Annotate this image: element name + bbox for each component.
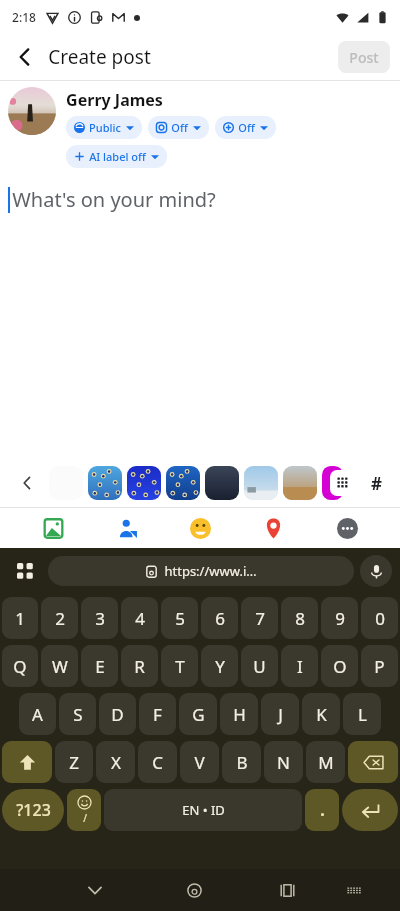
staticText: T bbox=[175, 655, 185, 678]
button[interactable]: AI label off bbox=[66, 145, 167, 168]
staticText: O bbox=[333, 655, 347, 678]
button[interactable]: 6 bbox=[201, 597, 238, 639]
button[interactable]: Home bbox=[176, 872, 212, 908]
button[interactable]: https://www.i… bbox=[48, 556, 354, 586]
button[interactable]: Switch keyboard bbox=[336, 872, 372, 908]
button[interactable]: G bbox=[179, 693, 217, 735]
button[interactable]: W bbox=[41, 645, 78, 687]
button[interactable]: H bbox=[220, 693, 258, 735]
button[interactable]: Public bbox=[66, 116, 142, 139]
button[interactable]: Backspace bbox=[348, 741, 398, 783]
button[interactable]: D bbox=[99, 693, 136, 735]
button[interactable]: E bbox=[81, 645, 118, 687]
button[interactable]: Off bbox=[148, 116, 209, 139]
button[interactable]: K bbox=[302, 693, 340, 735]
button[interactable]: Tag people bbox=[107, 508, 147, 548]
button[interactable]: O bbox=[321, 645, 358, 687]
button[interactable]: Back bbox=[6, 38, 44, 76]
button[interactable]: 2 bbox=[41, 597, 78, 639]
button[interactable]: 7 bbox=[241, 597, 278, 639]
staticText: W bbox=[52, 655, 68, 678]
button[interactable] bbox=[244, 466, 278, 500]
button[interactable]: N bbox=[264, 741, 303, 783]
button[interactable]: Voice input bbox=[360, 555, 392, 587]
button[interactable]: More bbox=[327, 508, 367, 548]
button[interactable]: M bbox=[306, 741, 345, 783]
staticText: A bbox=[32, 703, 43, 726]
staticText: G bbox=[192, 703, 205, 726]
button[interactable]: 9 bbox=[321, 597, 358, 639]
staticText: L bbox=[358, 703, 367, 726]
button[interactable]: EN • ID bbox=[104, 789, 302, 831]
button[interactable]: 5 bbox=[161, 597, 198, 639]
staticText: 5 bbox=[175, 607, 185, 630]
staticText: 1 bbox=[15, 607, 25, 630]
staticText: 4 bbox=[135, 607, 145, 630]
button[interactable]: . bbox=[305, 789, 339, 831]
button[interactable]: Q bbox=[2, 645, 38, 687]
staticText: V bbox=[194, 751, 205, 774]
staticText: 2:18 bbox=[12, 9, 36, 25]
button[interactable]: Off bbox=[215, 116, 276, 139]
staticText: # bbox=[371, 472, 382, 495]
button[interactable] bbox=[88, 466, 122, 500]
button[interactable] bbox=[283, 466, 317, 500]
button[interactable]: Hashtag bbox=[361, 466, 392, 500]
button[interactable] bbox=[166, 466, 200, 500]
button[interactable]: 8 bbox=[281, 597, 318, 639]
staticText: 3 bbox=[95, 607, 105, 630]
staticText: Post bbox=[349, 48, 379, 67]
button[interactable]: Photo bbox=[33, 508, 73, 548]
button[interactable]: Post bbox=[338, 41, 390, 73]
button[interactable]: B bbox=[222, 741, 261, 783]
staticText: I bbox=[297, 655, 303, 678]
button[interactable]: P bbox=[361, 645, 398, 687]
button[interactable]: Shift bbox=[2, 741, 52, 783]
button[interactable]: Location bbox=[253, 508, 293, 548]
button[interactable]: Z bbox=[55, 741, 93, 783]
button[interactable]: J bbox=[261, 693, 299, 735]
staticText: Y bbox=[215, 655, 225, 678]
staticText: U bbox=[253, 655, 266, 678]
button[interactable]: Apps bbox=[330, 470, 356, 496]
button[interactable]: X bbox=[96, 741, 135, 783]
button[interactable]: I bbox=[281, 645, 318, 687]
button[interactable]: A bbox=[19, 693, 56, 735]
staticText: Gerry James bbox=[66, 89, 163, 111]
button[interactable]: S bbox=[59, 693, 96, 735]
staticText: F bbox=[153, 703, 162, 726]
button[interactable]: Y bbox=[201, 645, 238, 687]
staticText: H bbox=[233, 703, 246, 726]
button[interactable]: Feeling bbox=[180, 508, 220, 548]
button[interactable]: 4 bbox=[121, 597, 158, 639]
button[interactable]: F bbox=[139, 693, 176, 735]
staticText: 7 bbox=[255, 607, 265, 630]
button[interactable]: Enter bbox=[342, 789, 398, 831]
button[interactable]: Recents bbox=[269, 872, 305, 908]
button[interactable] bbox=[127, 466, 161, 500]
staticText: Public bbox=[89, 120, 121, 135]
staticText: X bbox=[111, 751, 121, 774]
button[interactable]: Collapse bbox=[10, 466, 44, 500]
button[interactable]: V bbox=[180, 741, 219, 783]
button[interactable]: R bbox=[121, 645, 158, 687]
button[interactable]: 3 bbox=[81, 597, 118, 639]
staticText: What's on your mind? bbox=[12, 186, 216, 213]
button[interactable]: 0 bbox=[361, 597, 398, 639]
button[interactable]: Emoji bbox=[67, 789, 101, 831]
button[interactable]: U bbox=[241, 645, 278, 687]
staticText: K bbox=[316, 703, 327, 726]
button[interactable]: L bbox=[343, 693, 381, 735]
staticText: S bbox=[73, 703, 83, 726]
button[interactable]: T bbox=[161, 645, 198, 687]
button[interactable]: Toolbar bbox=[8, 554, 42, 588]
button[interactable]: C bbox=[138, 741, 177, 783]
staticText: 8 bbox=[295, 607, 305, 630]
button[interactable]: ?123 bbox=[2, 789, 64, 831]
button[interactable] bbox=[205, 466, 239, 500]
button[interactable]: Hide keyboard bbox=[77, 872, 113, 908]
staticText: 0 bbox=[375, 607, 385, 630]
staticText: Create post bbox=[48, 44, 151, 70]
button[interactable]: 1 bbox=[2, 597, 38, 639]
